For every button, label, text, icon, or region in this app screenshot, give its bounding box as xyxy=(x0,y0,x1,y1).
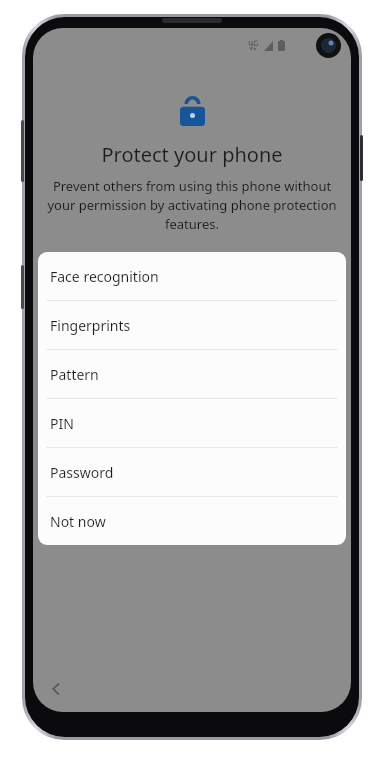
staticText: Pattern xyxy=(50,365,99,384)
button[interactable]: PIN xyxy=(38,399,346,447)
button[interactable]: Face recognition xyxy=(38,252,346,300)
button[interactable]: Not now xyxy=(38,497,346,545)
staticText: Fingerprints xyxy=(50,316,131,335)
button[interactable]: Password xyxy=(38,448,346,496)
staticText: Prevent others from using this phone wit… xyxy=(46,177,338,233)
button[interactable]: Back xyxy=(37,670,75,708)
button[interactable]: Pattern xyxy=(38,350,346,398)
staticText: PIN xyxy=(50,414,74,433)
staticText: Face recognition xyxy=(50,267,159,286)
staticText: Password xyxy=(50,463,114,482)
staticText: Protect your phone xyxy=(33,141,351,168)
staticText: Not now xyxy=(50,512,106,531)
button[interactable]: Fingerprints xyxy=(38,301,346,349)
